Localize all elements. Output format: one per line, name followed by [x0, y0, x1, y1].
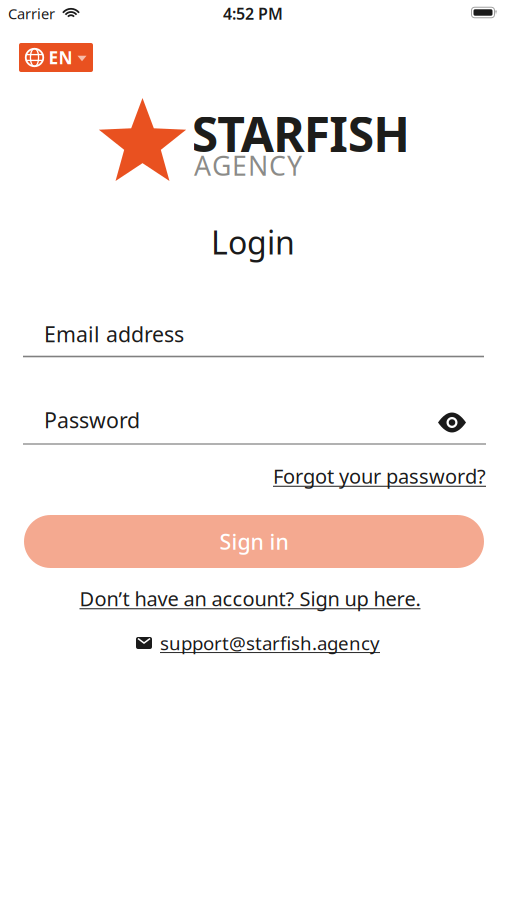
staticText: Forgot your password? [273, 463, 486, 489]
staticText: 4:52 PM [223, 3, 283, 24]
staticText: Email address [44, 320, 184, 348]
staticText: Sign in [219, 527, 288, 556]
staticText: Don’t have an account? Sign up here. [79, 585, 420, 612]
staticText: support@starfish.agency [160, 631, 380, 655]
button[interactable]: Sign in [24, 515, 484, 568]
button[interactable]: Change language [19, 43, 93, 72]
staticText: AGENCY [194, 148, 302, 183]
staticText: Carrier [8, 4, 55, 23]
staticText: EN [48, 46, 72, 69]
button[interactable]: Don’t have an account? Sign up here. [79, 585, 420, 612]
staticText: STARFISH [192, 102, 410, 165]
button[interactable]: Show password [437, 412, 466, 433]
button[interactable]: support@starfish.agency [136, 631, 380, 655]
staticText: Password [44, 406, 140, 434]
staticText: Login [211, 221, 295, 263]
button[interactable]: Forgot your password? [273, 463, 486, 489]
